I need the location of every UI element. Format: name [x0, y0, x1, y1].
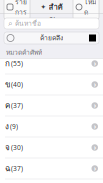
staticText: คำสำคัญ: [48, 0, 62, 26]
staticText: ค้นหาชื่อ: [15, 18, 41, 29]
staticText: (9): [10, 122, 18, 131]
staticText: (30): [11, 143, 23, 152]
staticText: ข: [5, 78, 10, 91]
staticText: จ: [5, 141, 10, 154]
staticText: รายการ: [15, 0, 27, 17]
button[interactable]: จ: [0, 142, 103, 163]
button[interactable]: ฉ: [0, 163, 103, 183]
staticText: ›: [94, 164, 96, 173]
staticText: (40): [11, 80, 23, 89]
staticText: (37): [11, 101, 23, 110]
staticText: ค้ายคลึง: [40, 33, 63, 43]
staticText: ฉ: [5, 162, 10, 175]
staticText: ›: [94, 122, 96, 131]
button[interactable]: โหมด: [73, 0, 99, 19]
staticText: ›: [94, 59, 96, 68]
button[interactable]: ค้ายคลึง: [4, 32, 99, 44]
button[interactable]: ก: [0, 58, 103, 79]
staticText: ⌕: [8, 20, 12, 27]
staticText: ›: [94, 143, 96, 152]
button[interactable]: ⌕: [4, 18, 99, 29]
button[interactable]: ข: [0, 79, 103, 100]
staticText: หมวดคำศัพท์: [6, 47, 42, 58]
button[interactable]: ค: [0, 100, 103, 121]
staticText: ง: [5, 120, 9, 133]
staticText: ✦: [40, 3, 46, 11]
button[interactable]: ง: [0, 121, 103, 142]
button[interactable]: รายการ: [4, 0, 30, 19]
staticText: ›: [94, 101, 96, 110]
staticText: โหมด: [84, 0, 96, 17]
staticText: ค: [5, 99, 10, 112]
staticText: ›: [94, 80, 96, 89]
staticText: (37): [11, 164, 23, 173]
staticText: ก: [5, 57, 10, 70]
staticText: (55): [11, 59, 23, 68]
